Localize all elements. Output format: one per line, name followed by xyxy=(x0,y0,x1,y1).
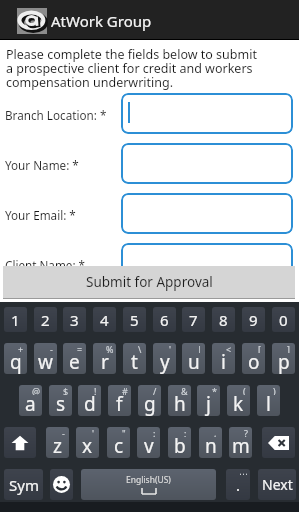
staticText: w xyxy=(38,349,53,374)
button[interactable]: f xyxy=(108,385,131,416)
button[interactable]: j xyxy=(197,385,220,416)
button[interactable]: c xyxy=(107,427,130,458)
staticText: f xyxy=(116,391,123,416)
staticText: ; xyxy=(184,427,187,437)
button[interactable]: k xyxy=(227,385,250,416)
staticText: Next xyxy=(262,475,293,494)
staticText: v xyxy=(144,433,154,458)
staticText: i xyxy=(221,349,226,374)
staticText: o xyxy=(248,349,260,374)
button[interactable]: 6 xyxy=(153,307,176,332)
staticText: AtWork Group xyxy=(51,11,152,31)
staticText: Your Email: * xyxy=(5,207,76,223)
button[interactable]: l xyxy=(257,385,280,416)
staticText: . xyxy=(236,475,241,495)
button[interactable]: q xyxy=(4,343,27,374)
button[interactable]: Submit for Approval xyxy=(3,266,295,298)
button[interactable] xyxy=(121,243,293,284)
staticText: s xyxy=(56,391,66,416)
button[interactable]: Sym xyxy=(4,469,43,500)
button[interactable]: t xyxy=(123,343,146,374)
button[interactable] xyxy=(121,193,293,234)
staticText: \ xyxy=(138,343,142,353)
staticText: - xyxy=(50,343,53,353)
button[interactable]: h xyxy=(168,385,191,416)
button[interactable]: z xyxy=(46,427,69,458)
staticText: Branch Location: * xyxy=(5,107,107,123)
staticText: " xyxy=(122,427,126,437)
button[interactable]: 9 xyxy=(242,307,265,332)
button[interactable]: i xyxy=(212,343,235,374)
staticText: Submit for Approval xyxy=(86,273,213,291)
button[interactable]: y xyxy=(153,343,176,374)
button[interactable] xyxy=(121,143,293,184)
button[interactable]: s xyxy=(49,385,72,416)
staticText: n xyxy=(205,433,217,458)
staticText: & xyxy=(181,385,188,395)
staticText: ! xyxy=(94,385,97,395)
button[interactable]: Shift xyxy=(4,427,36,458)
staticText: h xyxy=(174,391,186,416)
button[interactable]: a xyxy=(19,385,42,416)
staticText: Sym xyxy=(9,475,39,495)
button[interactable]: b xyxy=(168,427,191,458)
staticText: # xyxy=(122,385,128,395)
button[interactable] xyxy=(121,93,293,134)
button[interactable]: 2 xyxy=(34,307,57,332)
staticText: | xyxy=(197,343,202,353)
button[interactable]: 4 xyxy=(93,307,116,332)
button[interactable]: 8 xyxy=(212,307,235,332)
staticText: 1 xyxy=(11,310,20,330)
button[interactable]: e xyxy=(63,343,86,374)
staticText: y xyxy=(160,349,170,374)
staticText: @ xyxy=(32,385,41,395)
button[interactable]: w xyxy=(34,343,57,374)
button[interactable]: 0 xyxy=(272,307,295,332)
staticText: Your Name: * xyxy=(5,157,79,173)
staticText: k xyxy=(233,391,244,416)
staticText: b xyxy=(174,433,186,458)
staticText: 2 xyxy=(41,310,50,330)
staticText: r xyxy=(101,349,109,374)
staticText: Please complete the fields below to subm… xyxy=(6,46,262,91)
staticText: < xyxy=(226,343,232,353)
staticText: 8 xyxy=(219,310,228,330)
button[interactable]: u xyxy=(182,343,205,374)
staticText: , xyxy=(214,427,217,437)
button[interactable]: v xyxy=(137,427,160,458)
staticText: c xyxy=(114,433,124,458)
staticText: [ xyxy=(258,343,261,353)
staticText: / xyxy=(153,385,157,395)
button[interactable]: x xyxy=(76,427,99,458)
staticText: 3 xyxy=(70,310,79,330)
button[interactable]: m xyxy=(229,427,252,458)
staticText: g xyxy=(144,391,156,416)
staticText: ] xyxy=(287,343,290,353)
staticText: e xyxy=(69,349,80,374)
button[interactable]: n xyxy=(199,427,222,458)
staticText: 5 xyxy=(130,310,139,330)
button[interactable]: Next xyxy=(258,469,296,500)
staticText: l xyxy=(266,391,271,416)
staticText: : xyxy=(153,427,156,437)
staticText: ' xyxy=(92,427,95,437)
staticText: English(US) xyxy=(126,474,171,486)
staticText: d xyxy=(84,391,96,416)
button[interactable]: 3 xyxy=(63,307,86,332)
button[interactable]: d xyxy=(78,385,101,416)
button[interactable]: 5 xyxy=(123,307,146,332)
staticText: Client Name: * xyxy=(5,257,86,273)
staticText: u xyxy=(188,349,200,374)
button[interactable]: Space xyxy=(81,469,216,500)
button[interactable]: Backspace xyxy=(262,427,295,458)
button[interactable]: o xyxy=(242,343,265,374)
staticText: a xyxy=(25,391,36,416)
button[interactable]: 7 xyxy=(182,307,205,332)
button[interactable]: r xyxy=(93,343,116,374)
button[interactable]: Emoji xyxy=(50,469,73,500)
button[interactable]: . xyxy=(226,469,250,500)
staticText: $ xyxy=(63,385,69,395)
button[interactable]: 1 xyxy=(4,307,27,332)
button[interactable]: p xyxy=(272,343,295,374)
button[interactable]: g xyxy=(138,385,161,416)
